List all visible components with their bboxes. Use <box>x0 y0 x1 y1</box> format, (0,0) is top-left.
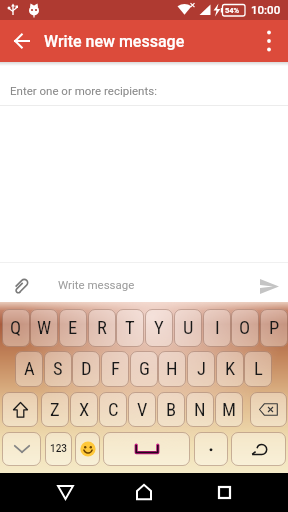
staticText: N <box>194 399 206 421</box>
button[interactable]: Z <box>41 392 69 427</box>
staticText: 54% <box>225 6 240 15</box>
staticText: W <box>37 317 52 339</box>
staticText: Z <box>50 399 60 421</box>
button[interactable] <box>103 432 190 466</box>
button[interactable]: H <box>158 351 186 387</box>
button[interactable] <box>253 25 285 57</box>
staticText: X <box>79 399 90 421</box>
staticText: F <box>111 358 120 380</box>
button[interactable]: F <box>101 351 129 387</box>
button[interactable]: W <box>30 309 58 347</box>
staticText: C <box>108 399 119 421</box>
staticText: A <box>24 358 35 380</box>
staticText: 10:00 <box>251 3 281 16</box>
button[interactable]: B <box>157 392 185 427</box>
button[interactable] <box>206 474 242 510</box>
staticText: Q <box>10 317 22 339</box>
button[interactable] <box>250 392 287 427</box>
button[interactable] <box>2 392 38 427</box>
button[interactable]: V <box>128 392 156 427</box>
button[interactable] <box>47 474 83 510</box>
staticText: Enter one or more recipients: <box>10 84 157 97</box>
button[interactable] <box>194 432 228 466</box>
button[interactable]: G <box>130 351 158 387</box>
button[interactable]: A <box>15 351 43 387</box>
staticText: P <box>269 317 280 339</box>
button[interactable]: T <box>116 309 144 347</box>
staticText: Y <box>154 317 164 339</box>
button[interactable] <box>4 269 38 303</box>
button[interactable]: 123 <box>45 432 72 466</box>
button[interactable]: N <box>186 392 214 427</box>
staticText: I <box>215 317 220 339</box>
staticText: B <box>166 399 177 421</box>
button[interactable] <box>251 269 287 303</box>
staticText: V <box>137 399 148 421</box>
staticText: U <box>183 317 194 339</box>
button[interactable] <box>75 432 100 466</box>
staticText: T <box>125 317 135 339</box>
button[interactable]: C <box>99 392 127 427</box>
button[interactable]: P <box>260 309 288 347</box>
button[interactable]: X <box>70 392 98 427</box>
button[interactable]: R <box>88 309 116 347</box>
staticText: D <box>81 358 92 380</box>
button[interactable]: I <box>203 309 231 347</box>
button[interactable]: O <box>231 309 259 347</box>
staticText: K <box>225 358 236 380</box>
button[interactable]: J <box>187 351 215 387</box>
staticText: Write new message <box>44 32 185 51</box>
button[interactable] <box>126 474 162 510</box>
staticText: G <box>139 358 150 380</box>
button[interactable]: Q <box>2 309 30 347</box>
staticText: E <box>68 317 78 339</box>
staticText: R <box>97 317 107 339</box>
button[interactable] <box>6 25 38 57</box>
button[interactable]: D <box>72 351 100 387</box>
staticText: O <box>239 317 251 339</box>
staticText: M <box>222 399 236 421</box>
button[interactable]: Y <box>145 309 173 347</box>
button[interactable] <box>2 432 41 466</box>
button[interactable]: K <box>216 351 244 387</box>
button[interactable] <box>231 432 286 466</box>
staticText: J <box>197 358 206 380</box>
button[interactable]: M <box>215 392 243 427</box>
button[interactable]: E <box>59 309 87 347</box>
staticText: Write message <box>58 278 135 291</box>
button[interactable]: S <box>44 351 72 387</box>
staticText: S <box>53 358 63 380</box>
staticText: L <box>254 358 263 380</box>
staticText: H <box>166 358 178 380</box>
button[interactable]: U <box>174 309 202 347</box>
staticText: 123 <box>50 443 68 455</box>
button[interactable]: L <box>244 351 272 387</box>
